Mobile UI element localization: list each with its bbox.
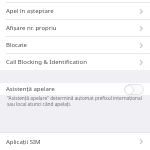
button[interactable]: Call Blocking & Identification [0,54,150,70]
button[interactable]: Apel în așteptare [0,3,150,19]
staticText: Call Blocking & Identification [6,58,87,66]
button[interactable]: Asistență apelare [0,83,150,95]
staticText: Afișare nr. propriu [6,24,57,32]
button[interactable]: Afișare nr. propriu [0,20,150,36]
button[interactable]: Blocate [0,37,150,53]
button[interactable]: Aplicații SIM [0,133,150,150]
button[interactable]: Asistență apelare toggle [124,84,144,95]
staticText: Aplicații SIM [6,138,41,146]
staticText: Apel în așteptare [6,7,54,15]
staticText: Blocate [6,41,27,49]
staticText: "Asistență apelare" determină automat pr… [7,95,149,107]
staticText: Asistență apelare [6,85,55,93]
